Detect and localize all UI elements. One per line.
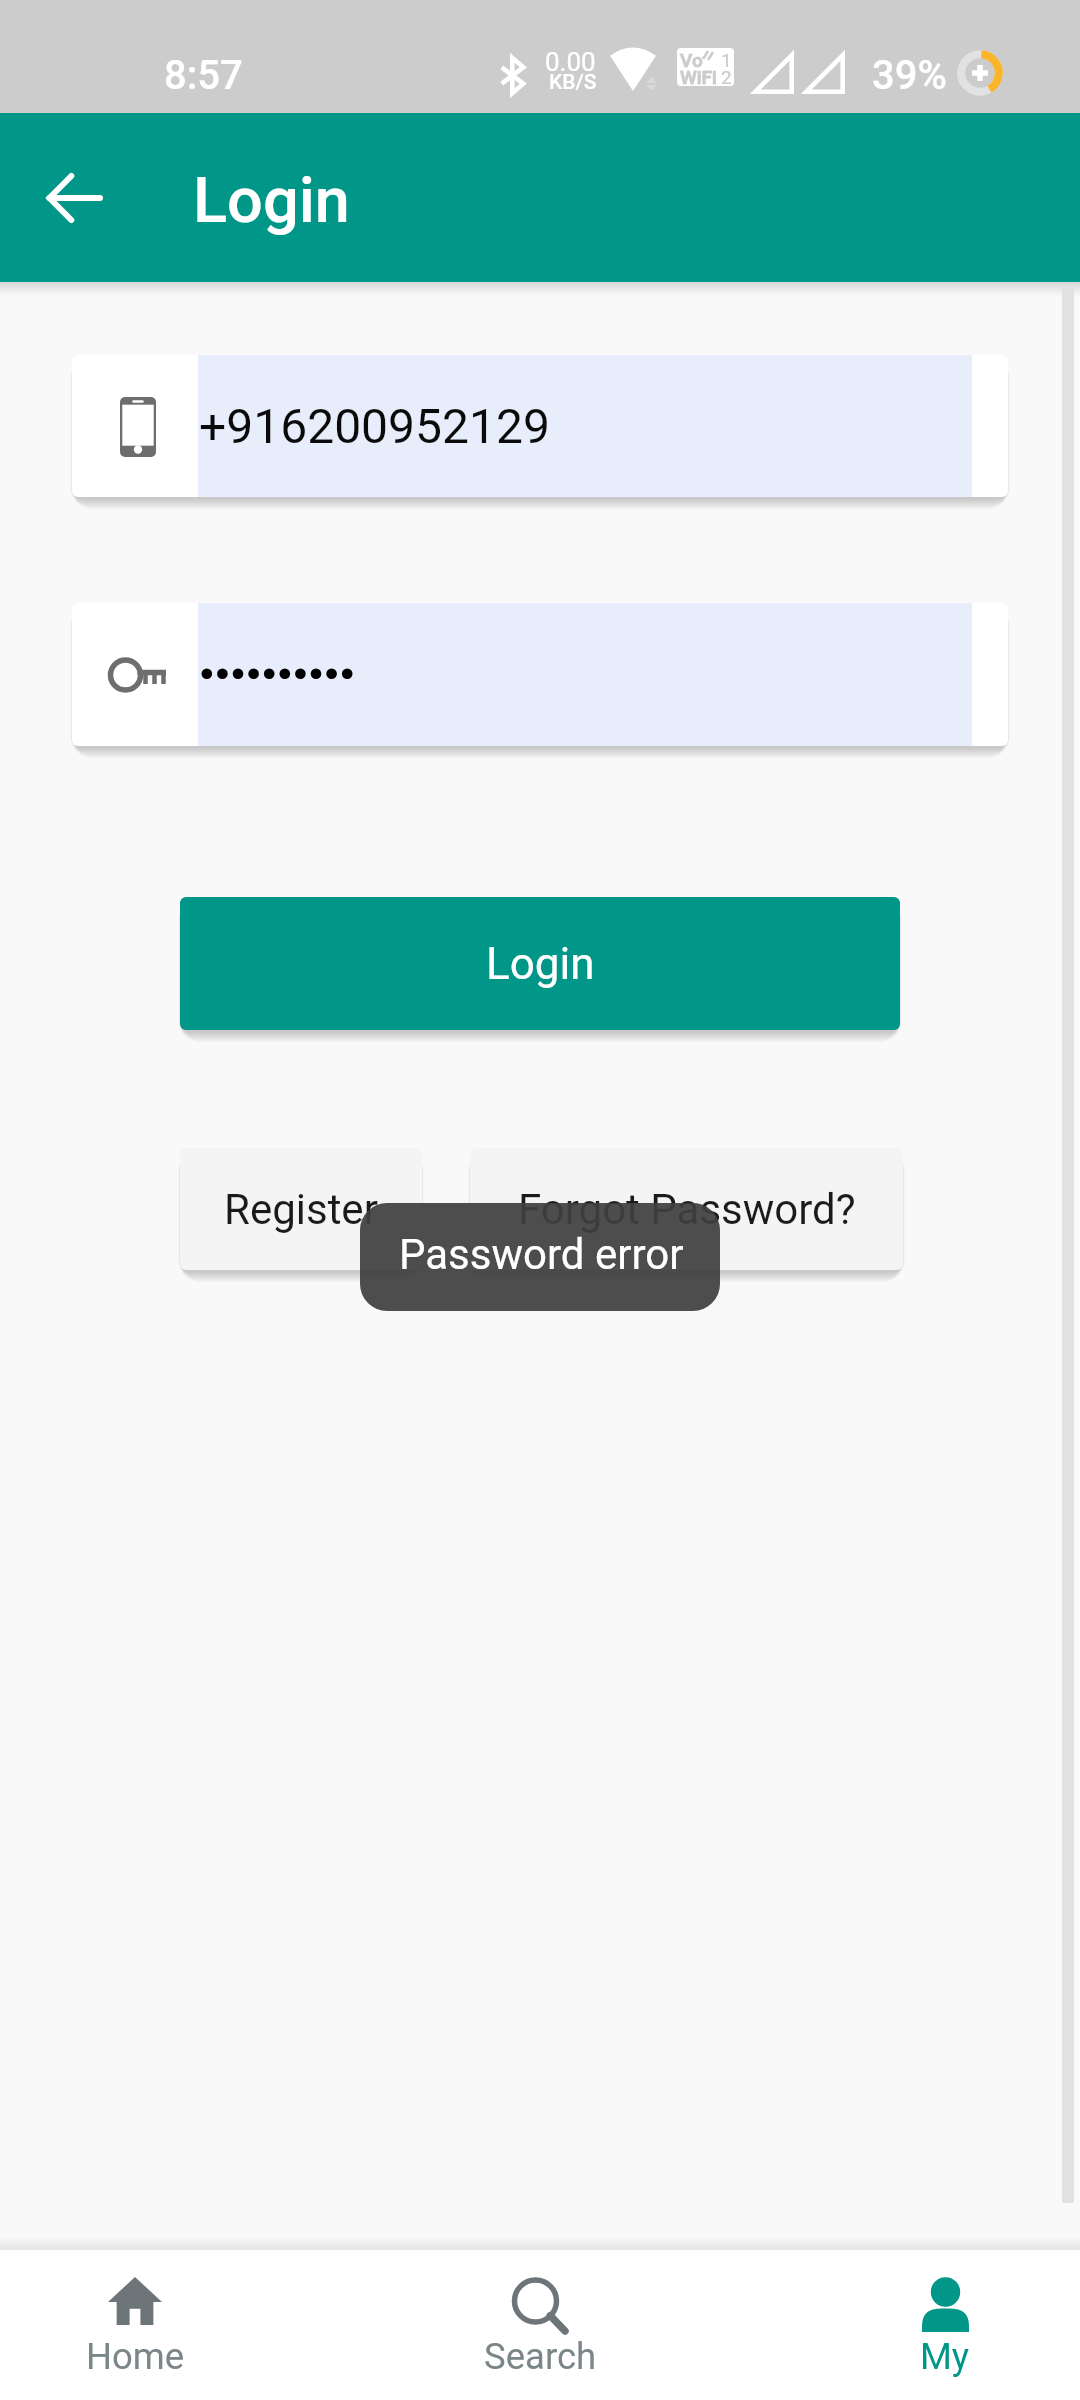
staticText: My bbox=[920, 2335, 970, 2378]
button[interactable]: Forgot Password? bbox=[470, 1148, 903, 1270]
staticText: 2 bbox=[721, 66, 732, 86]
staticText: Forgot Password? bbox=[518, 1185, 856, 1234]
staticText: 1 bbox=[721, 49, 732, 71]
staticText: Search bbox=[484, 2335, 597, 2378]
staticText: WiFi bbox=[680, 66, 717, 86]
button[interactable]: Back bbox=[31, 155, 117, 241]
button[interactable]: Login bbox=[180, 897, 900, 1030]
staticText: Home bbox=[86, 2335, 185, 2378]
button[interactable]: Register bbox=[180, 1148, 422, 1270]
staticText: Login bbox=[486, 938, 595, 990]
staticText: KB/S bbox=[549, 70, 597, 95]
button[interactable]: Search bbox=[405, 2250, 675, 2400]
button[interactable]: Home bbox=[0, 2250, 270, 2400]
button[interactable]: My bbox=[810, 2250, 1080, 2400]
staticText: Password error bbox=[399, 1230, 684, 1279]
staticText: 8:57 bbox=[164, 52, 243, 99]
staticText: 0.00 bbox=[545, 47, 596, 77]
staticText: Vo bbox=[680, 49, 703, 71]
staticText: Login bbox=[193, 164, 350, 238]
staticText: Register bbox=[224, 1185, 378, 1234]
staticText: 39% bbox=[872, 52, 947, 99]
staticText: +916200952129 bbox=[199, 398, 550, 454]
